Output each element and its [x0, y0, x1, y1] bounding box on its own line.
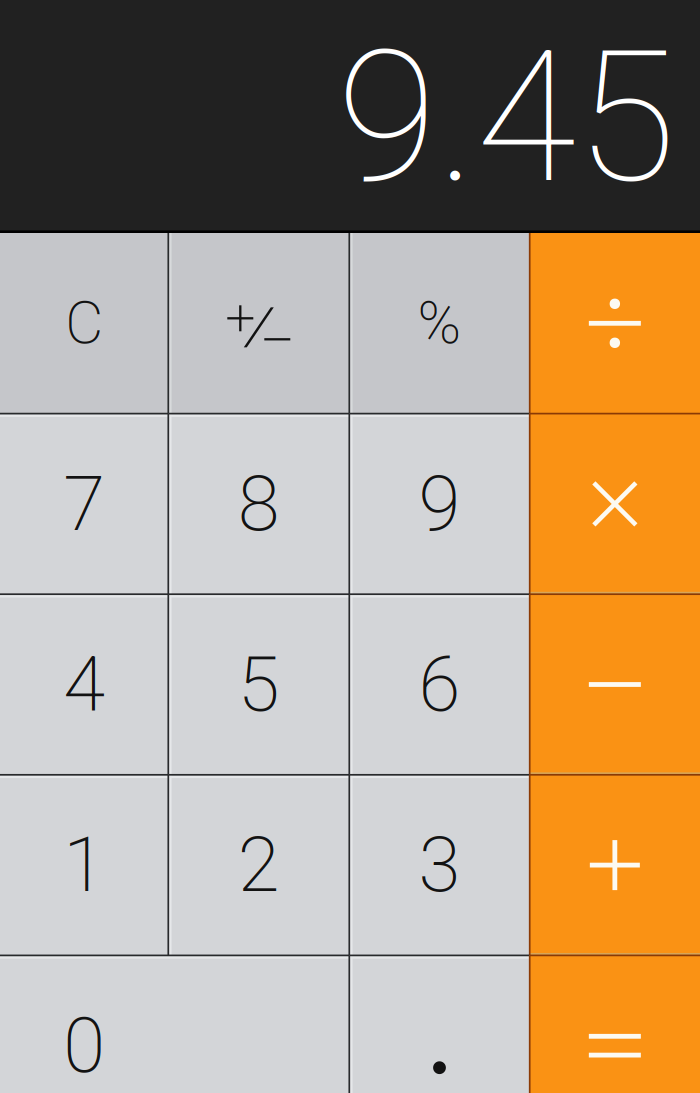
staticText: 2	[238, 821, 280, 910]
staticText: 5	[238, 640, 280, 729]
button[interactable]: Decimal point	[349, 955, 530, 1093]
staticText: %	[417, 289, 461, 358]
button[interactable]: Plus minus	[168, 233, 349, 414]
staticText: 4	[63, 640, 105, 729]
button[interactable]: 1	[0, 775, 168, 955]
staticText: 0	[63, 1001, 105, 1090]
button[interactable]: 7	[0, 414, 168, 594]
staticText: 6	[418, 640, 460, 729]
button[interactable]: Divide	[530, 233, 700, 414]
staticText: 7	[63, 459, 105, 548]
staticText: 9.45	[337, 10, 676, 224]
button[interactable]: 8	[168, 414, 349, 594]
button[interactable]: 2	[168, 775, 349, 955]
staticText: 9	[418, 459, 460, 548]
staticText: C	[65, 289, 103, 358]
button[interactable]: Add	[530, 775, 700, 955]
button[interactable]: Subtract	[530, 594, 700, 775]
staticText: 3	[418, 821, 460, 910]
button[interactable]: 0	[0, 955, 349, 1093]
staticText: 1	[63, 821, 105, 910]
button[interactable]: Multiply	[530, 414, 700, 594]
button[interactable]: 5	[168, 594, 349, 775]
button[interactable]: 9	[349, 414, 530, 594]
button[interactable]: 4	[0, 594, 168, 775]
button[interactable]: 3	[349, 775, 530, 955]
button[interactable]: 6	[349, 594, 530, 775]
staticText: 8	[238, 459, 280, 548]
button[interactable]: %	[349, 233, 530, 414]
button[interactable]: C	[0, 233, 168, 414]
button[interactable]: Equals	[530, 955, 700, 1093]
